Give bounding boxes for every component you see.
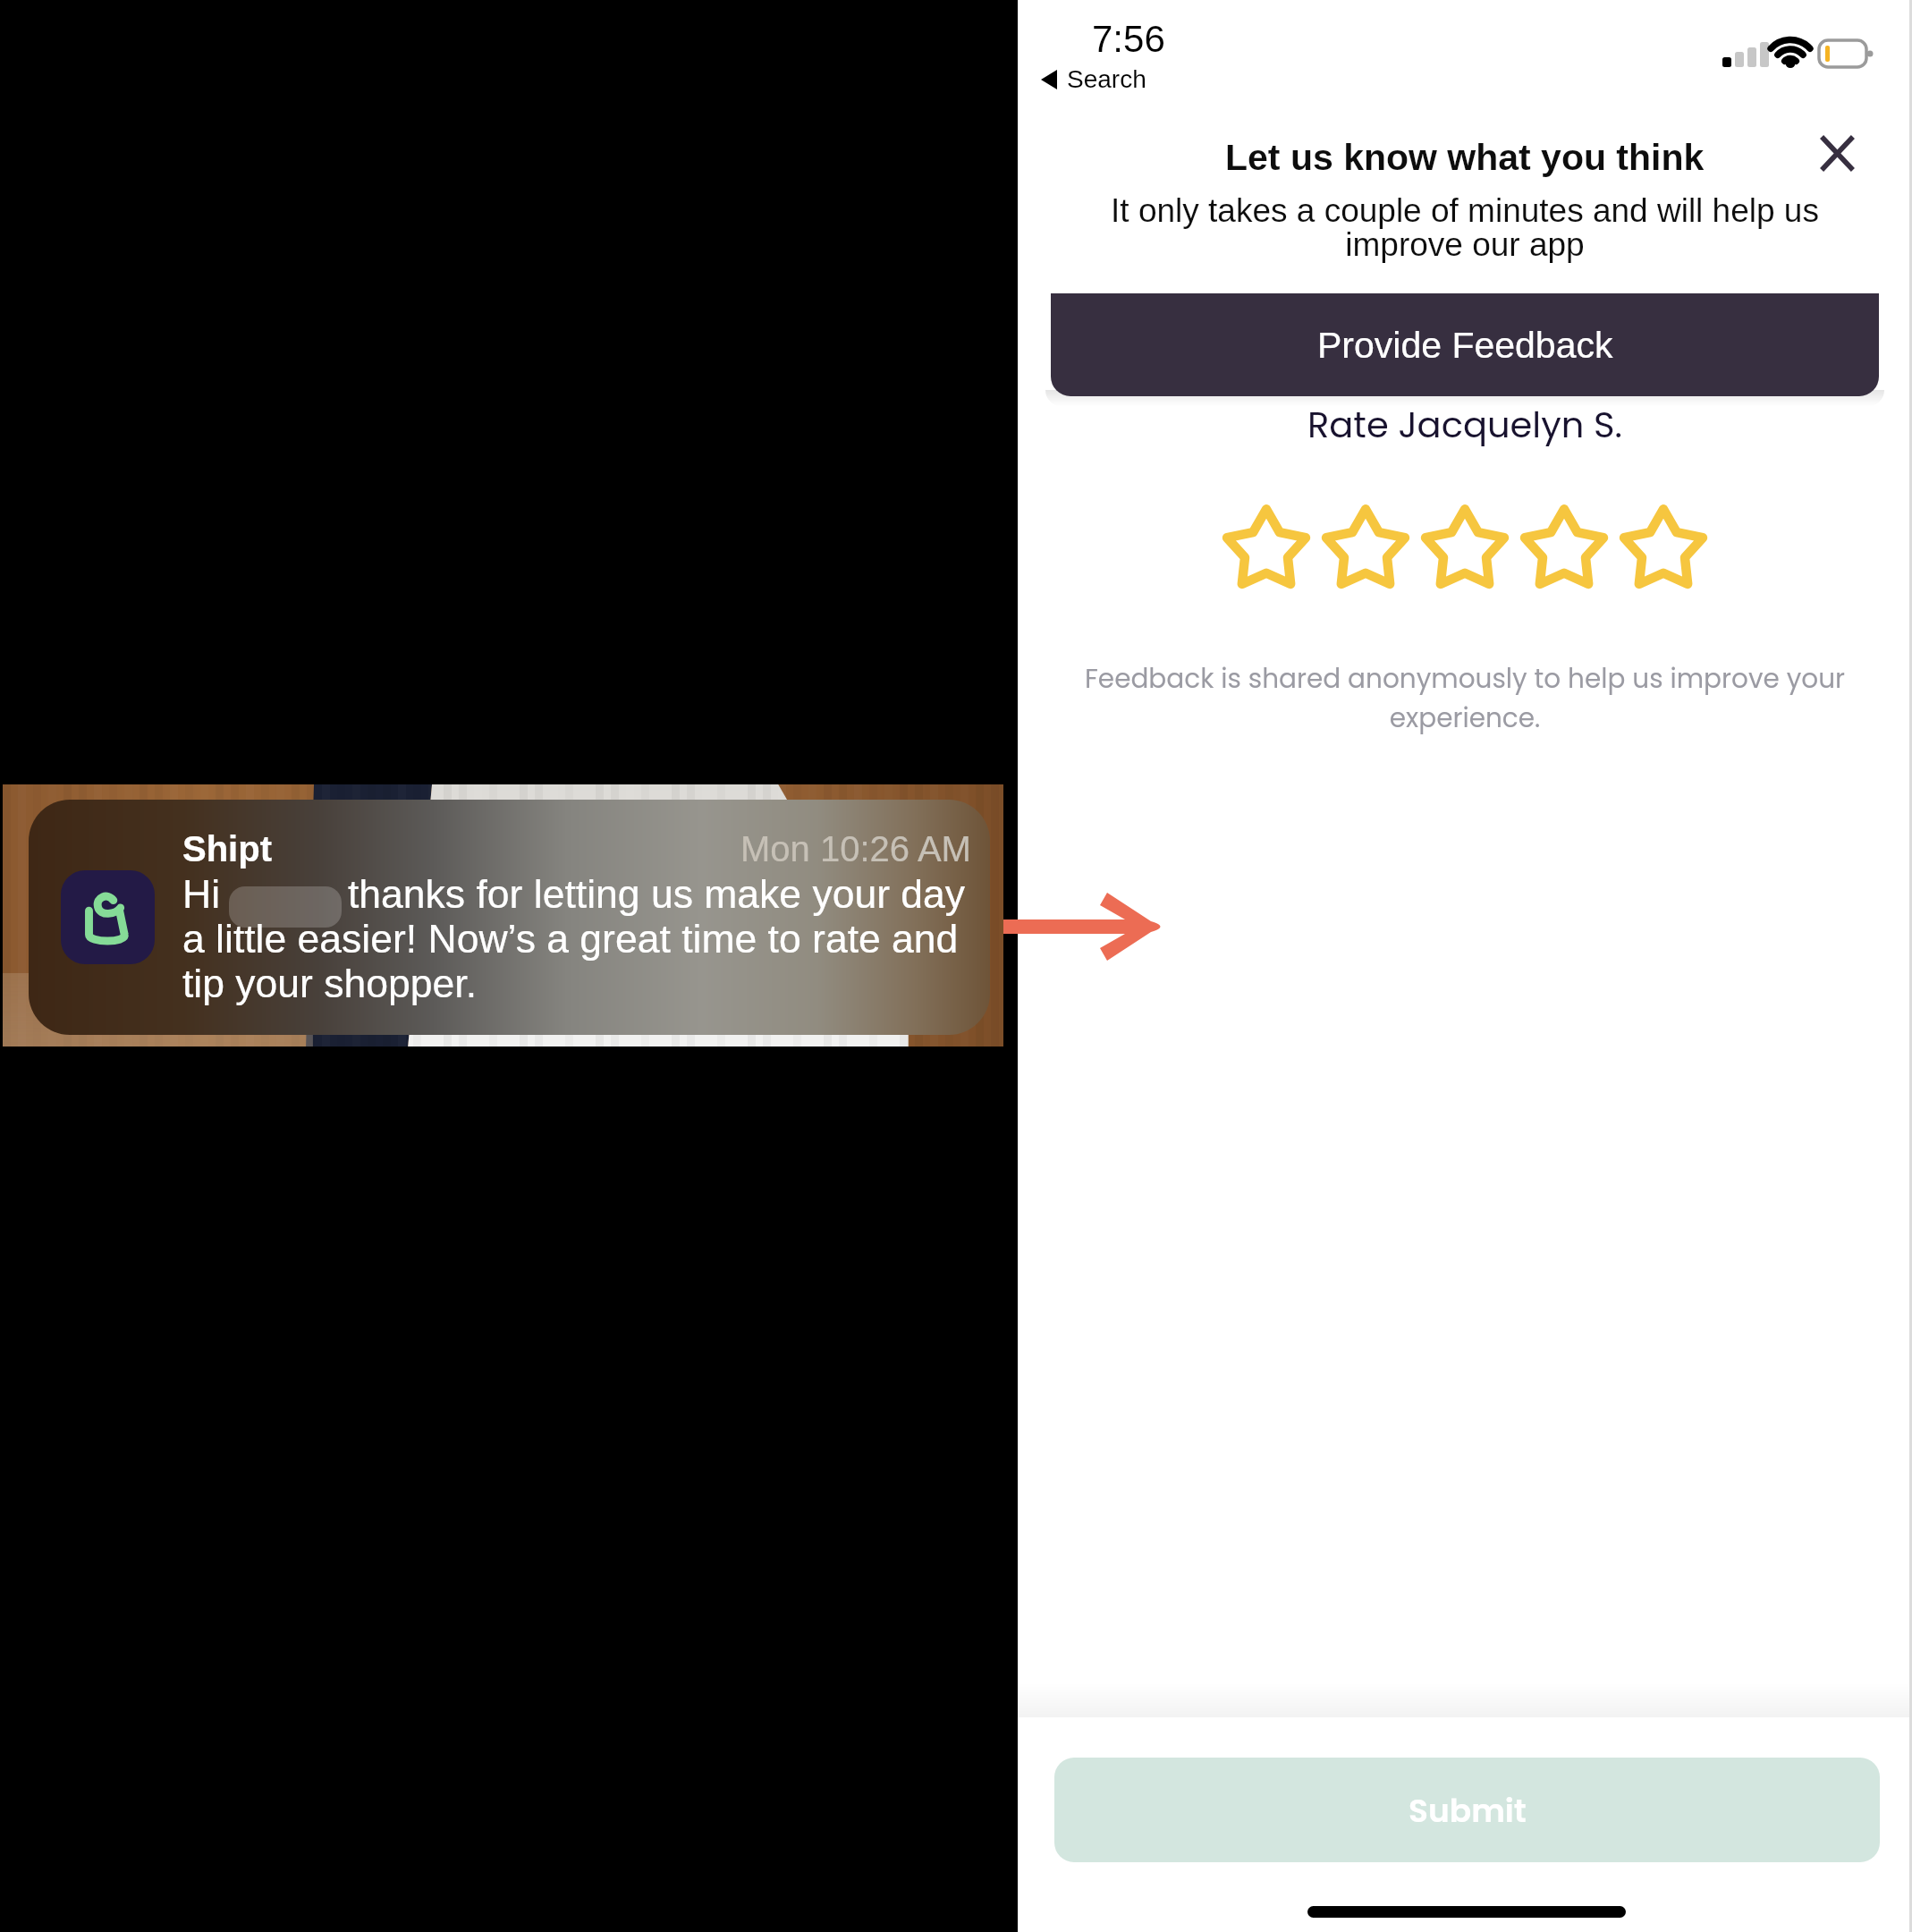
staticText: Search: [1067, 65, 1146, 93]
staticText: a little easier! Now’s a great time to r…: [182, 917, 959, 1006]
staticText: Hi: [182, 872, 221, 917]
button[interactable]: Shipt: [29, 800, 990, 1035]
staticText: Feedback is shared anonymously to help u…: [1075, 660, 1855, 737]
staticText: 7:56: [1092, 18, 1165, 60]
button[interactable]: Rate 3 star: [1421, 502, 1509, 589]
staticText: Mon 10:26 AM: [740, 829, 971, 869]
staticText: Rate Jacquelyn S.: [1307, 400, 1622, 450]
staticText: Shipt: [182, 829, 272, 869]
button[interactable]: Rate 1 star: [1222, 502, 1310, 589]
staticText: Provide Feedback: [1317, 325, 1613, 366]
button[interactable]: Dismiss: [1802, 118, 1872, 188]
button[interactable]: Rate 5 star: [1620, 502, 1707, 589]
button[interactable]: Submit: [1054, 1758, 1880, 1862]
button[interactable]: Provide Feedback: [1051, 293, 1879, 396]
button[interactable]: Rate 4 star: [1520, 502, 1608, 589]
button[interactable]: Search: [1041, 65, 1146, 93]
staticText: Let us know what you think: [1225, 137, 1705, 178]
button[interactable]: Rate 2 star: [1322, 502, 1409, 589]
staticText: It only takes a couple of minutes and wi…: [1101, 192, 1829, 262]
staticText: thanks for letting us make your day: [348, 872, 966, 917]
staticText: Submit: [1409, 1788, 1527, 1833]
